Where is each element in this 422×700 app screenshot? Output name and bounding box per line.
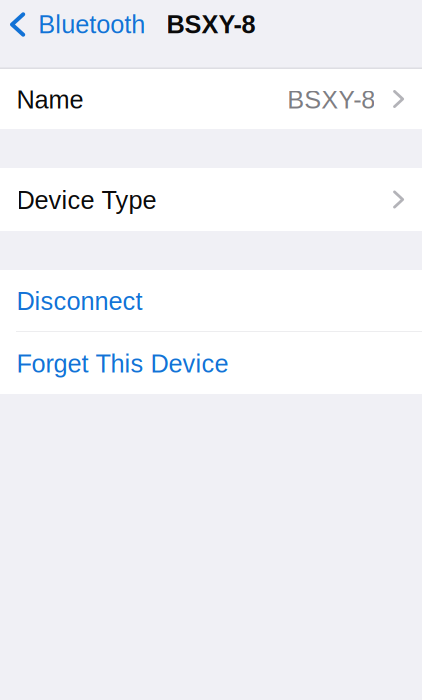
staticText: Disconnect xyxy=(17,287,143,315)
staticText: Forget This Device xyxy=(17,350,229,378)
staticText: BSXY-8 xyxy=(166,10,255,39)
button[interactable]: Disconnect xyxy=(0,270,422,331)
button[interactable]: Forget This Device xyxy=(0,332,422,394)
staticText: Bluetooth xyxy=(38,10,145,39)
staticText: Name xyxy=(17,86,84,114)
staticText: BSXY-8 xyxy=(287,86,375,114)
button[interactable]: Device Type xyxy=(0,168,422,231)
button[interactable]: Bluetooth xyxy=(0,0,145,49)
staticText: Device Type xyxy=(17,186,157,214)
button[interactable]: Name xyxy=(0,69,422,129)
